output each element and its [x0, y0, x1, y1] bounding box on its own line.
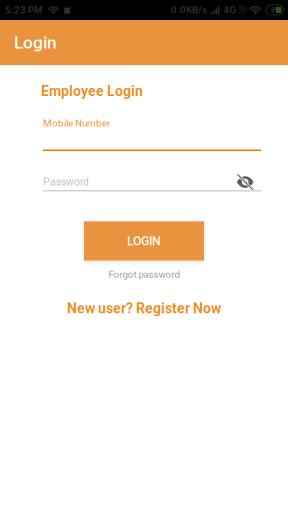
staticText: LOGIN	[127, 234, 161, 248]
staticText: 39	[271, 6, 279, 14]
staticText: VoL	[238, 5, 246, 10]
staticText: New user? Register Now	[67, 300, 221, 317]
button[interactable]: Show password	[236, 173, 261, 191]
staticText: Password	[43, 176, 89, 188]
staticText: 0.0KB/s	[171, 4, 207, 16]
button[interactable]: LOGIN	[84, 221, 204, 260]
staticText: Login	[14, 32, 57, 53]
staticText: 5:23 PM	[5, 4, 43, 16]
staticText: Mobile Number	[43, 117, 110, 129]
staticText: 4G	[223, 4, 236, 16]
staticText: Employee Login	[41, 83, 143, 99]
staticText: LTE	[238, 10, 246, 15]
button[interactable]: Forgot password	[84, 266, 204, 282]
button[interactable]: New user? Register Now	[44, 299, 244, 317]
staticText: Forgot password	[108, 269, 179, 280]
